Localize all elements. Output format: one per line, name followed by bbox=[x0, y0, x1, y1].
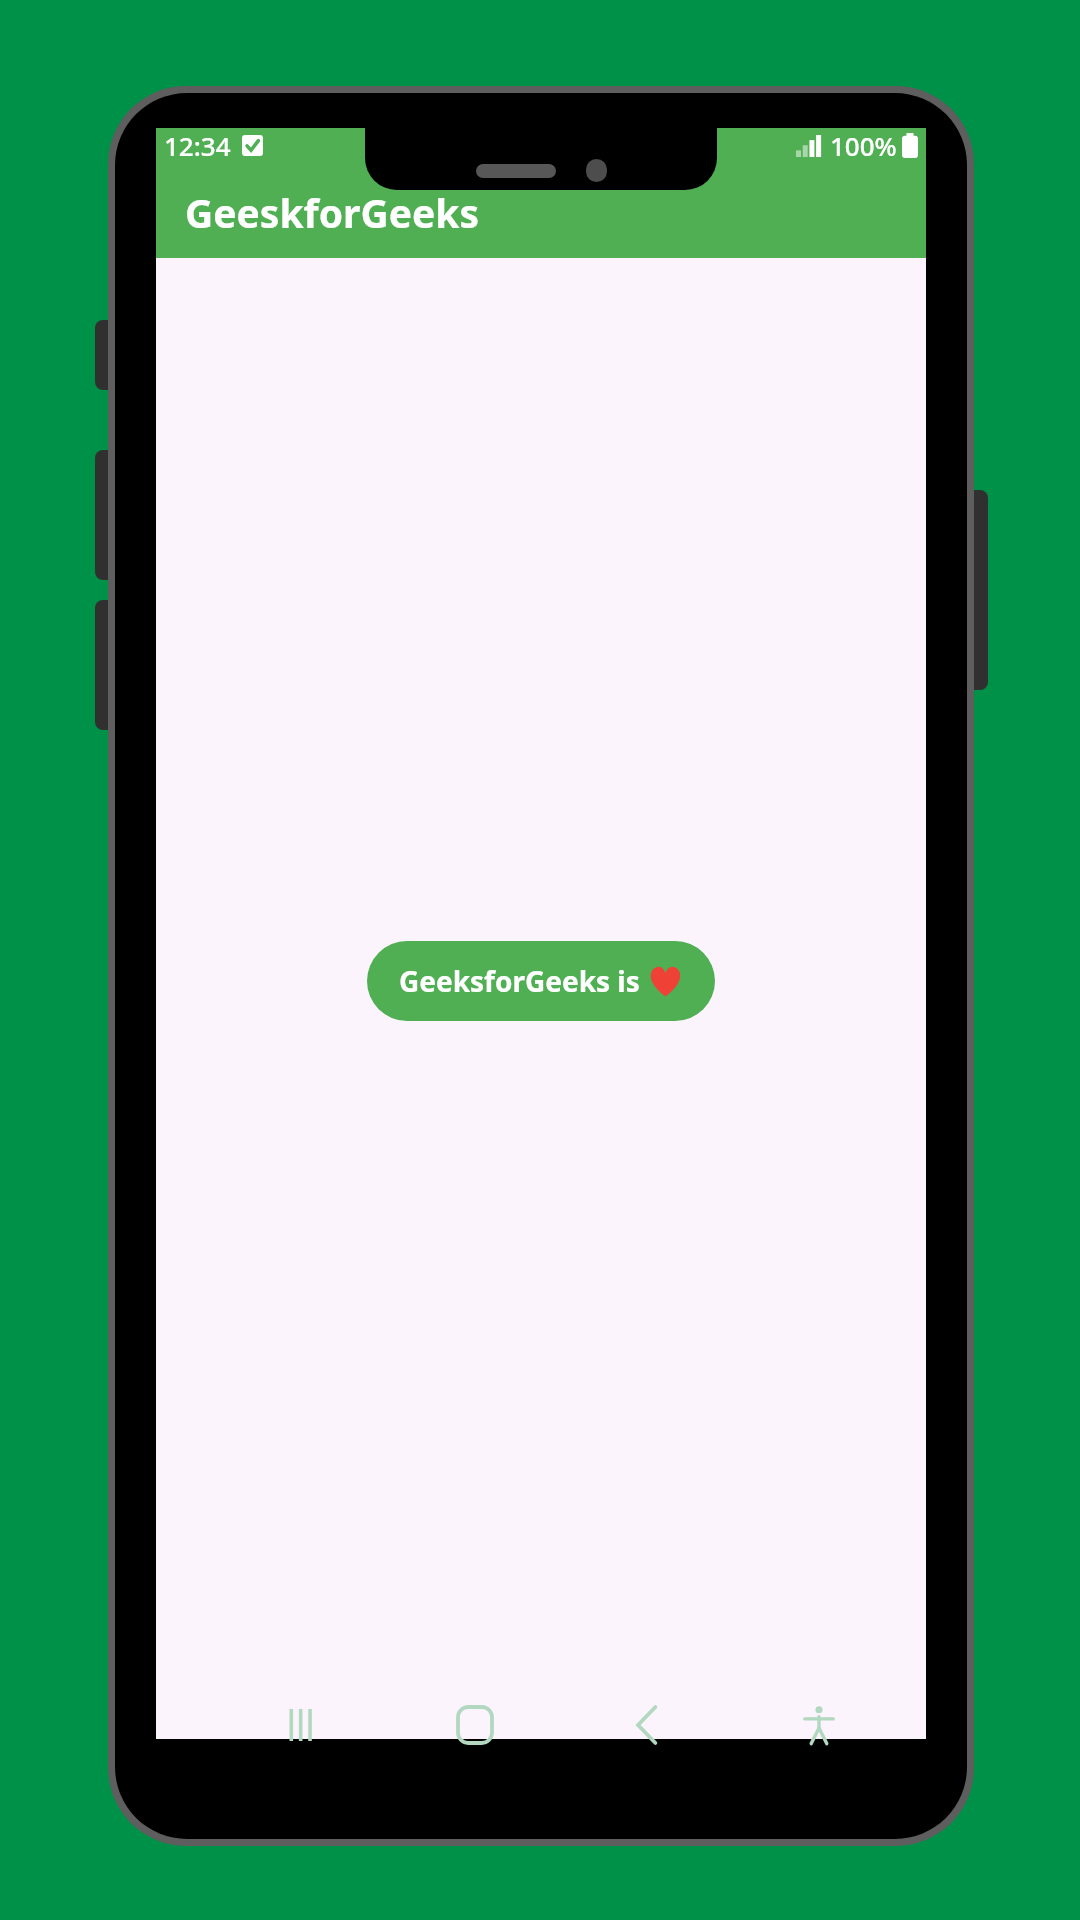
button[interactable]: Recent apps bbox=[265, 1687, 341, 1763]
staticText: GeeskforGeeks bbox=[185, 186, 480, 239]
staticText: 12:34 bbox=[164, 128, 231, 163]
button[interactable]: GeeksforGeeks is bbox=[367, 941, 715, 1021]
staticText: 100% bbox=[830, 128, 897, 163]
button[interactable]: Accessibility bbox=[781, 1687, 857, 1763]
button[interactable]: Home bbox=[437, 1687, 513, 1763]
staticText: GeeksforGeeks is bbox=[399, 962, 648, 1000]
button[interactable]: Back bbox=[609, 1687, 685, 1763]
